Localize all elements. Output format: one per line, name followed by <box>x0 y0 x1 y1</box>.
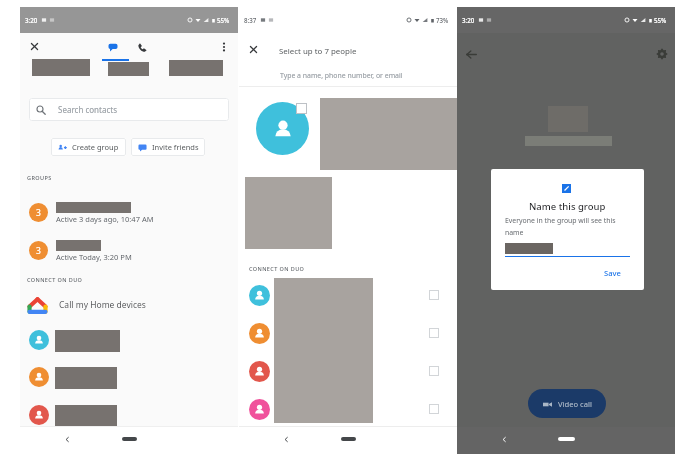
staticText: 73% <box>436 16 449 24</box>
button[interactable]: Search contacts <box>29 98 229 121</box>
button[interactable] <box>20 330 238 360</box>
button[interactable]: Back <box>462 45 480 63</box>
button[interactable]: Save <box>601 266 624 280</box>
staticText: Call my Home devices <box>59 299 146 311</box>
staticText: Active 3 days ago, 10:47 AM <box>56 214 154 224</box>
button[interactable] <box>239 285 457 323</box>
button[interactable]: Invite friends <box>131 138 205 156</box>
staticText: 3:20 <box>25 16 38 24</box>
button[interactable] <box>239 399 457 437</box>
button[interactable]: Calls tab <box>134 39 150 55</box>
button[interactable]: Call my Home devices <box>20 294 238 316</box>
button[interactable]: 3 <box>20 233 238 266</box>
button[interactable]: Video call <box>528 389 606 418</box>
button[interactable]: Settings <box>653 45 671 63</box>
staticText: Create group <box>72 142 119 152</box>
staticText: 55% <box>654 16 667 24</box>
button[interactable]: Back <box>283 436 290 443</box>
staticText: Select up to 7 people <box>279 46 357 57</box>
staticText: 3 <box>36 245 41 257</box>
button[interactable]: Close <box>26 38 42 54</box>
button[interactable]: Create group <box>51 138 126 156</box>
button[interactable]: More options <box>216 39 232 55</box>
button[interactable] <box>239 323 457 361</box>
staticText: 3:20 <box>462 16 475 24</box>
button[interactable]: Close <box>245 41 261 57</box>
staticText: Everyone in the group will see this name <box>505 216 623 237</box>
button[interactable] <box>20 367 238 397</box>
staticText: Name this group <box>529 200 606 213</box>
staticText: Active Today, 3:20 PM <box>56 252 132 262</box>
button[interactable]: Messages tab <box>105 39 121 55</box>
staticText: Video call <box>558 399 592 409</box>
staticText: Save <box>604 268 621 278</box>
staticText: CONNECT ON DUO <box>27 276 83 283</box>
button[interactable] <box>20 405 238 435</box>
button[interactable] <box>239 361 457 399</box>
staticText: 55% <box>217 16 230 24</box>
staticText: 8:37 <box>244 16 257 24</box>
staticText: Invite friends <box>152 142 199 152</box>
staticText: GROUPS <box>27 174 52 181</box>
staticText: 3 <box>36 207 41 219</box>
button[interactable]: Back <box>501 436 508 443</box>
button[interactable]: Back <box>64 436 71 443</box>
staticText: CONNECT ON DUO <box>249 265 305 272</box>
staticText: Type a name, phone number, or email <box>280 71 403 80</box>
staticText: Search contacts <box>58 104 117 115</box>
button[interactable]: 3 <box>20 195 238 228</box>
